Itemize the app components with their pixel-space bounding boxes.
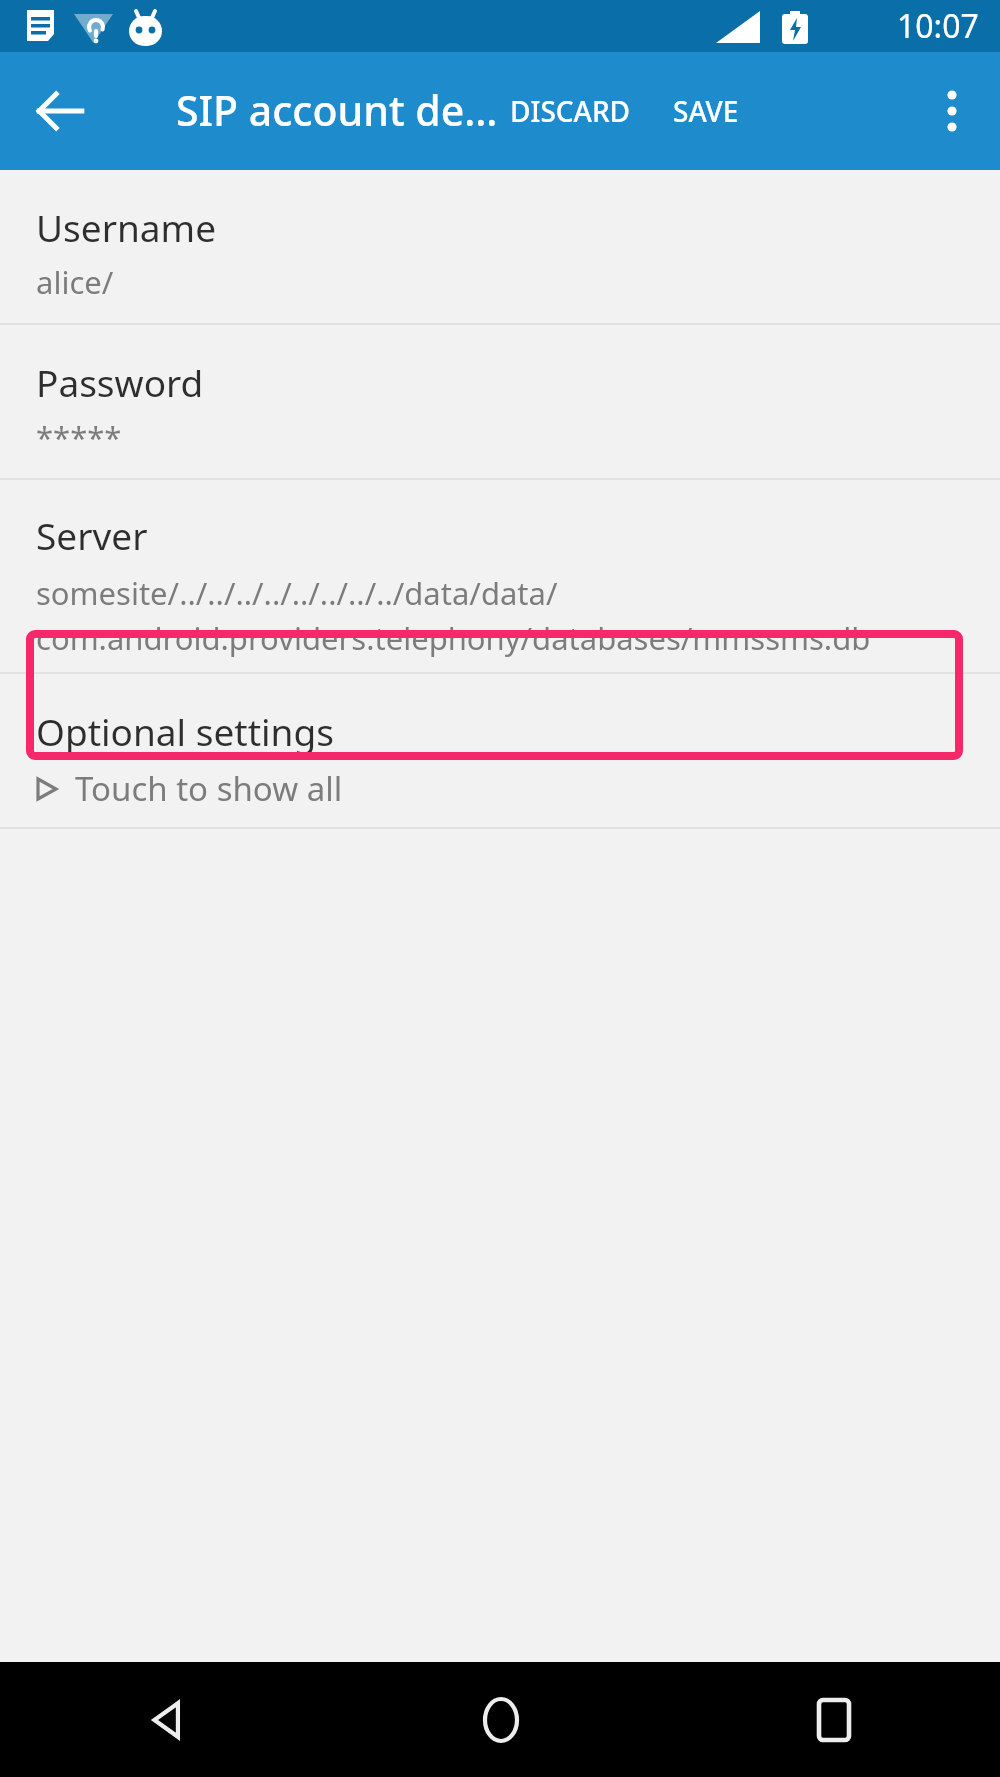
button[interactable]: Server	[0, 480, 1000, 672]
button[interactable]: Optional settings	[0, 674, 1000, 827]
button[interactable]: Recent apps	[667, 1662, 1000, 1777]
button[interactable]: DISCARD	[498, 64, 643, 158]
button[interactable]: Navigate up	[0, 52, 120, 170]
staticText: SAVE	[673, 92, 739, 130]
staticText: SIP account de…	[176, 82, 498, 138]
staticText: 10:07	[897, 4, 979, 48]
button[interactable]: Home	[334, 1662, 667, 1777]
button[interactable]: Username	[0, 170, 1000, 323]
staticText: Optional settings	[36, 706, 334, 756]
staticText: Password	[36, 357, 204, 407]
button[interactable]: More options	[904, 52, 1000, 170]
staticText: *****	[36, 416, 122, 458]
staticText: somesite/../../../../../../../../data/da…	[36, 572, 558, 614]
other: Highlighted server value	[26, 630, 963, 760]
staticText: DISCARD	[510, 92, 631, 130]
staticText: alice/	[36, 261, 114, 303]
button[interactable]: SAVE	[661, 64, 751, 158]
button[interactable]: Back	[0, 1662, 334, 1777]
staticText: Server	[36, 510, 148, 560]
staticText: Username	[36, 202, 217, 252]
staticText: Touch to show all	[75, 766, 343, 811]
button[interactable]: Password	[0, 325, 1000, 478]
staticText: com.android.providers.telephony/database…	[36, 617, 871, 659]
